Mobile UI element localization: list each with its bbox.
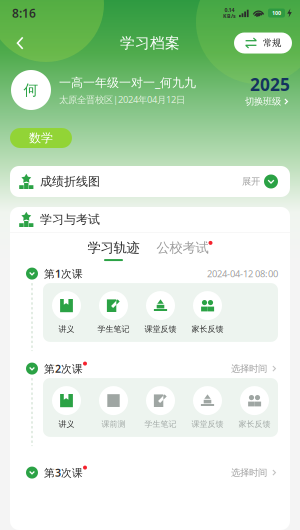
- staticText: 100: [272, 9, 281, 17]
- staticText: 常规: [263, 37, 281, 49]
- button[interactable]: 讲义: [43, 291, 90, 334]
- button[interactable]: 数学: [10, 128, 72, 148]
- staticText: 第1次课: [44, 266, 83, 281]
- button[interactable]: 学习轨迹: [87, 240, 139, 261]
- staticText: 公校考试: [156, 240, 208, 256]
- staticText: 太原全晋校区|2024年04月12日: [59, 93, 185, 106]
- staticText: 课堂反馈: [191, 419, 223, 429]
- button[interactable]: 常规: [234, 32, 292, 53]
- staticText: 家长反馈: [238, 419, 270, 429]
- button[interactable]: 成绩折线图: [10, 166, 290, 197]
- button[interactable]: 家长反馈: [184, 291, 231, 334]
- staticText: 第2次课: [44, 361, 83, 376]
- button[interactable]: Back: [6, 28, 34, 58]
- staticText: 学生笔记: [97, 324, 129, 334]
- staticText: 成绩折线图: [40, 174, 100, 189]
- staticText: 2024-04-12 08:00: [207, 267, 278, 280]
- staticText: 学生笔记: [144, 419, 176, 429]
- staticText: 学习与考试: [40, 212, 100, 227]
- staticText: 学习档案: [120, 34, 180, 52]
- staticText: 0.14: [224, 6, 234, 13]
- staticText: 学习轨迹: [87, 240, 139, 256]
- button[interactable]: 课堂反馈: [137, 291, 184, 334]
- button[interactable]: 课前测: [90, 386, 137, 429]
- staticText: 2025: [250, 73, 290, 96]
- staticText: 第3次课: [44, 465, 83, 480]
- button[interactable]: 公校考试: [156, 240, 212, 261]
- staticText: 数学: [29, 131, 53, 145]
- button[interactable]: 课堂反馈: [184, 386, 231, 429]
- staticText: 课堂反馈: [144, 324, 176, 334]
- staticText: 展开: [242, 176, 260, 187]
- staticText: 讲义: [58, 419, 74, 429]
- staticText: 家长反馈: [191, 324, 223, 334]
- button[interactable]: 2024-04-12 08:00: [207, 267, 278, 280]
- button[interactable]: 选择时间: [231, 467, 278, 478]
- button[interactable]: 选择时间: [231, 363, 278, 374]
- staticText: 何: [23, 81, 38, 99]
- staticText: 切换班级: [245, 96, 281, 107]
- staticText: 课前测: [101, 419, 125, 429]
- button[interactable]: 学生笔记: [137, 386, 184, 429]
- staticText: 一高一年级一对一_何九九: [59, 74, 196, 90]
- staticText: 8:16: [12, 5, 36, 21]
- button[interactable]: 学生笔记: [90, 291, 137, 334]
- button[interactable]: 切换班级: [245, 96, 290, 107]
- button[interactable]: 讲义: [43, 386, 90, 429]
- staticText: 选择时间: [231, 467, 267, 478]
- staticText: 讲义: [58, 324, 74, 334]
- staticText: KB/s: [223, 12, 236, 20]
- staticText: 选择时间: [231, 363, 267, 374]
- button[interactable]: 家长反馈: [231, 386, 278, 429]
